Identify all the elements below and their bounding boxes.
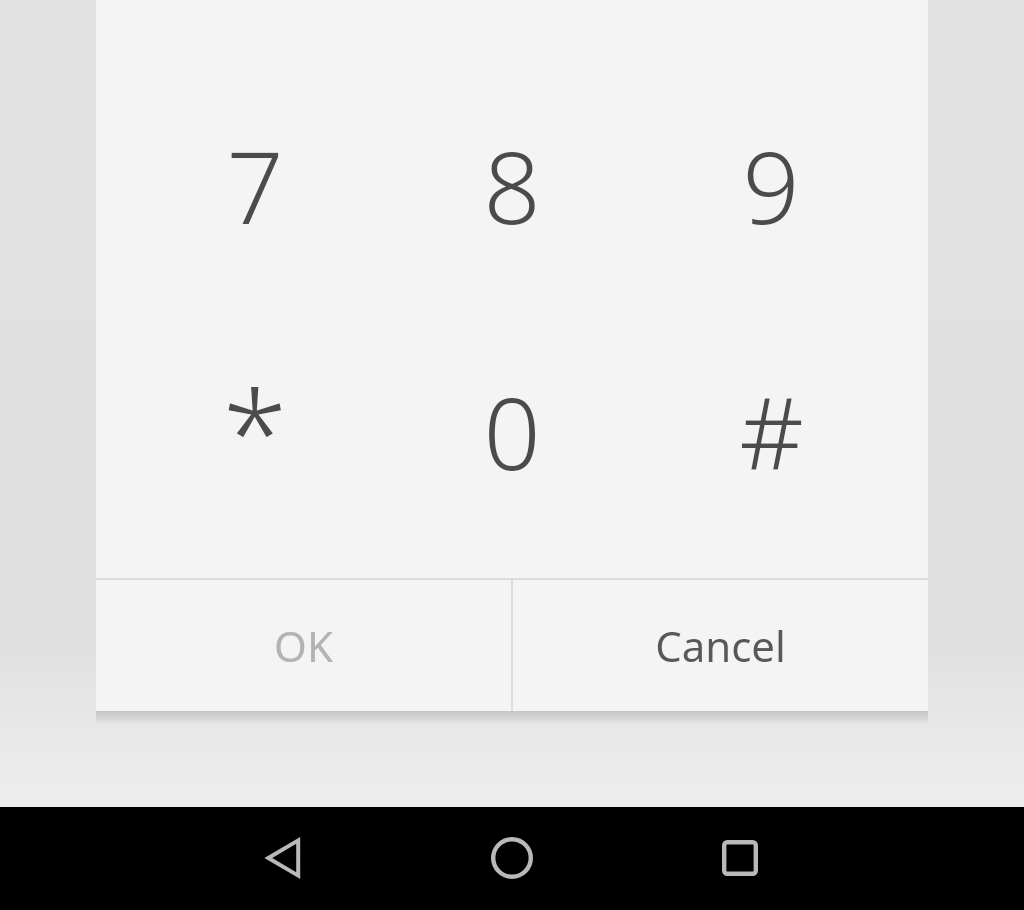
button[interactable]: Recent apps	[698, 816, 782, 900]
staticText: 8	[483, 117, 541, 253]
button[interactable]: 7	[145, 90, 365, 280]
button[interactable]: OK	[96, 580, 511, 711]
button[interactable]: Home	[470, 816, 554, 900]
button[interactable]: #	[661, 336, 881, 526]
button[interactable]: 8	[402, 90, 622, 280]
staticText: 9	[742, 117, 800, 253]
button[interactable]: 9	[661, 90, 881, 280]
staticText: *	[222, 351, 288, 512]
staticText: 7	[226, 117, 284, 253]
staticText: 0	[483, 363, 541, 499]
staticText: Cancel	[655, 617, 786, 674]
staticText: #	[739, 363, 804, 499]
button[interactable]: Back	[243, 816, 327, 900]
button[interactable]: *	[145, 336, 365, 526]
staticText: OK	[274, 617, 333, 674]
button[interactable]: Cancel	[513, 580, 928, 711]
button[interactable]: 0	[402, 336, 622, 526]
